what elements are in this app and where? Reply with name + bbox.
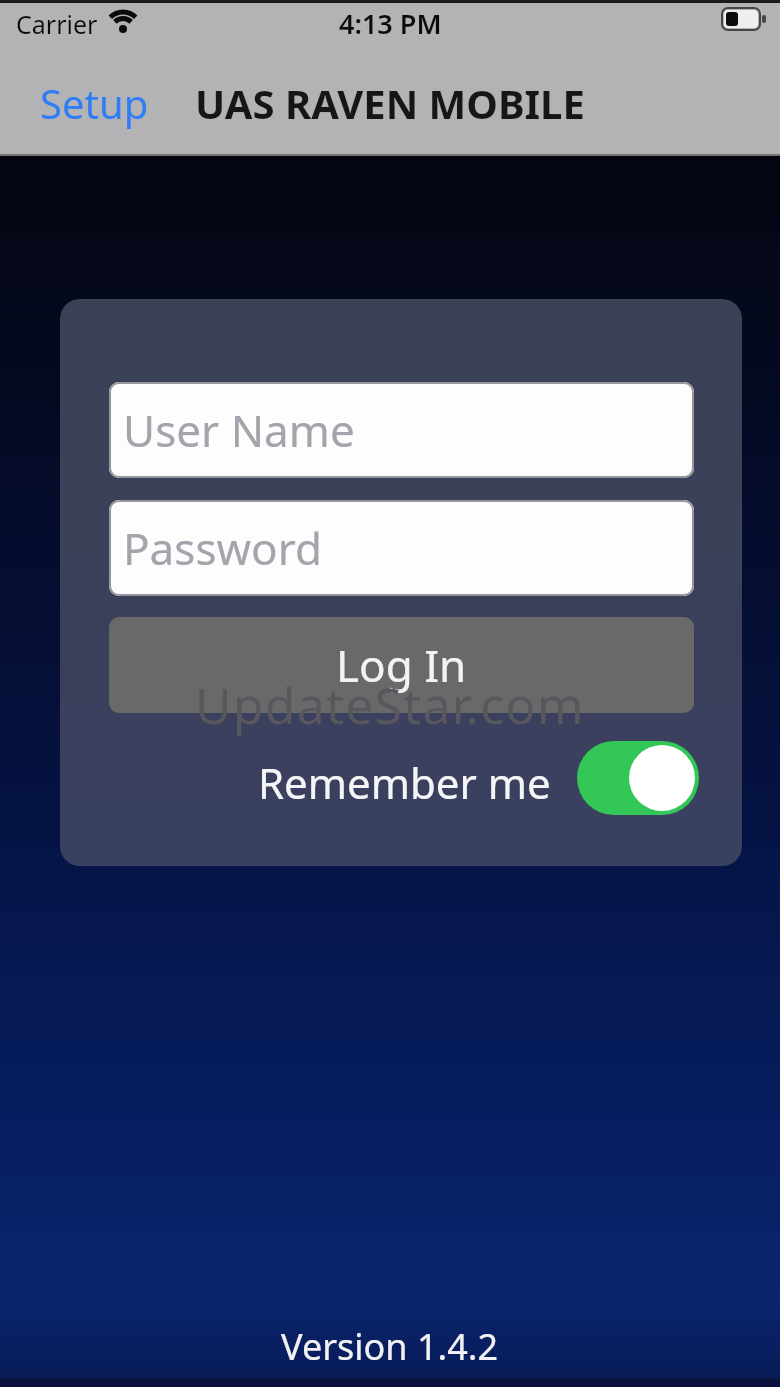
staticText: Version 1.4.2 bbox=[281, 1322, 499, 1371]
staticText: 4:13 PM bbox=[339, 5, 442, 42]
button[interactable]: User Name bbox=[109, 382, 694, 478]
staticText: Carrier bbox=[16, 7, 98, 41]
staticText: User Name bbox=[123, 400, 355, 460]
button[interactable]: Setup bbox=[40, 76, 149, 130]
staticText: UpdateStar.com bbox=[195, 671, 585, 739]
button[interactable] bbox=[577, 741, 699, 815]
staticText: Password bbox=[123, 518, 323, 578]
staticText: Remember me bbox=[258, 754, 551, 811]
button[interactable]: Password bbox=[109, 500, 694, 596]
staticText: UAS RAVEN MOBILE bbox=[195, 76, 585, 130]
staticText: Setup bbox=[40, 76, 149, 130]
staticText: Log In bbox=[336, 635, 467, 695]
button[interactable]: Log In bbox=[109, 617, 694, 713]
